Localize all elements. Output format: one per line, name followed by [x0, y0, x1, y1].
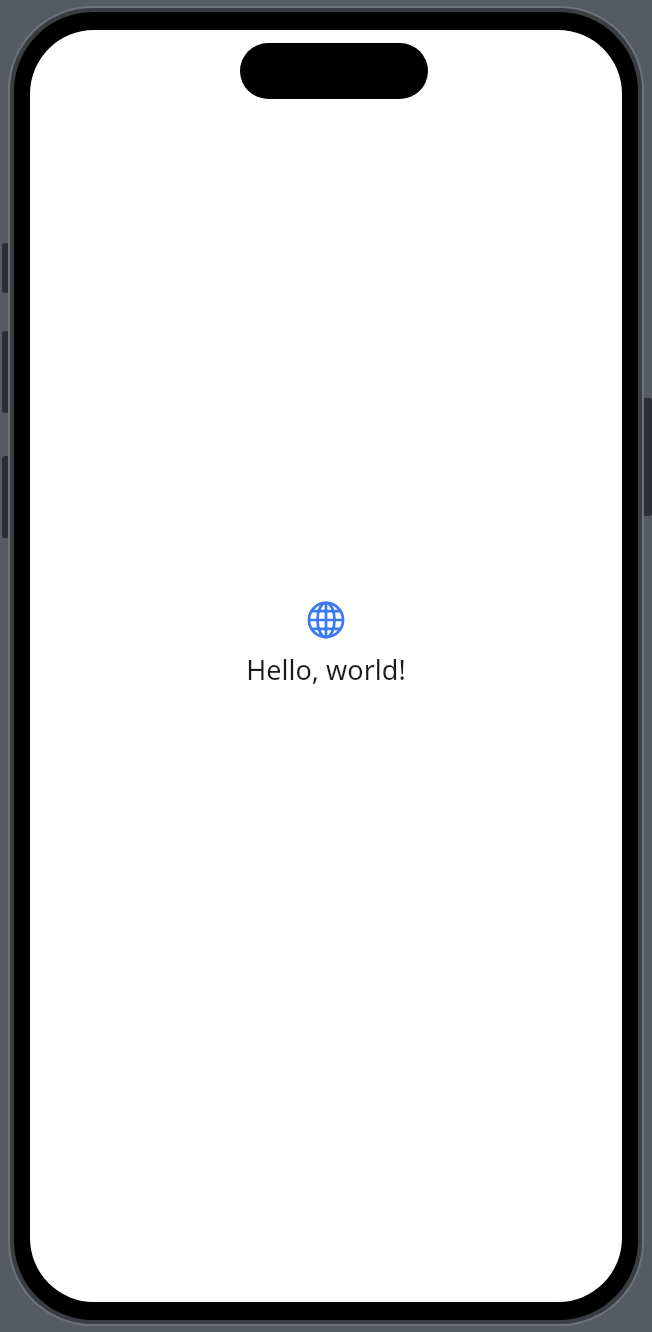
button[interactable]: Globe [307, 601, 345, 639]
button[interactable]: Volume up [2, 331, 16, 413]
staticText: Hello, world! [246, 651, 406, 688]
button[interactable]: Volume down [2, 456, 16, 538]
button[interactable]: Power [638, 398, 652, 516]
button[interactable]: Action button [2, 243, 16, 293]
